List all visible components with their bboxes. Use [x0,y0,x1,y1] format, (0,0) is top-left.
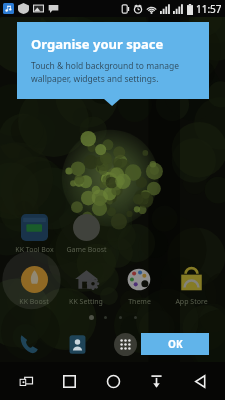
button[interactable]: KK Setting [63,265,109,308]
button[interactable]: Contacts [62,329,92,359]
button[interactable]: Game Boost [63,213,109,256]
button[interactable]: Home [95,364,131,398]
button[interactable]: KK Tool Box [11,213,57,256]
button[interactable]: App Store [168,265,214,308]
staticText: 11:57 [196,2,222,16]
staticText: Organise your space [31,35,164,53]
button[interactable]: OK [141,333,209,355]
staticText: Touch & hold background to manage wallpa… [31,60,179,85]
button[interactable]: Recents [51,364,87,398]
button[interactable]: Organise your space [17,22,209,99]
button[interactable]: Theme [116,265,162,308]
button[interactable]: All apps [110,329,140,359]
staticText: KK Boost [19,297,49,307]
staticText: App Store [175,297,208,307]
staticText: KK Tool Box [15,245,54,255]
staticText: Game Boost [66,245,107,255]
button[interactable]: Hide navigation bar [138,364,174,398]
button[interactable]: Back [182,364,218,398]
button[interactable]: KK Boost [11,265,57,308]
button[interactable]: Phone [14,329,44,359]
staticText: KK Setting [69,297,103,307]
button[interactable]: Screenshot [8,364,44,398]
staticText: OK [168,337,183,351]
staticText: Theme [128,297,151,307]
